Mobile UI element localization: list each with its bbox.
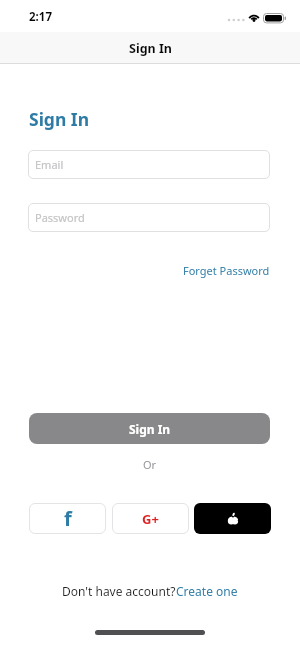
button[interactable]: Forget Password — [183, 263, 270, 278]
staticText: 2:17 — [29, 9, 52, 25]
button[interactable]: Create one — [176, 583, 238, 599]
staticText: G+ — [142, 510, 159, 528]
staticText: Email — [35, 157, 64, 172]
staticText: Sign In — [29, 107, 90, 131]
staticText: Sign In — [129, 421, 171, 437]
button[interactable]: G+ — [112, 503, 189, 534]
button[interactable]: Sign In — [29, 413, 270, 444]
button[interactable]: f — [29, 503, 106, 534]
staticText: Sign In — [129, 40, 172, 57]
button[interactable]: Email — [28, 150, 270, 179]
button[interactable] — [194, 503, 271, 534]
staticText: f — [64, 505, 72, 532]
button[interactable]: Password — [28, 203, 270, 232]
staticText: Or — [143, 457, 157, 472]
staticText: Password — [35, 210, 85, 225]
staticText: Don't have account? — [62, 583, 176, 599]
